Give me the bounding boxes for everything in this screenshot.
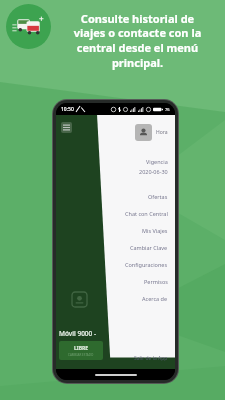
button[interactable]: Salir de la App <box>134 352 168 364</box>
staticText: Vigencia <box>146 158 168 165</box>
staticText: CAMBIAR ESTADO <box>68 353 94 357</box>
staticText: 76 <box>165 107 170 112</box>
button[interactable]: Profile <box>135 124 152 141</box>
button[interactable]: Mis Viajes <box>56 222 168 239</box>
staticText: Móvil 9000 - <box>59 329 97 338</box>
staticText: Hora <box>156 129 168 136</box>
button[interactable]: Open navigation menu <box>61 122 72 133</box>
staticText: Configuraciones <box>125 261 168 268</box>
button[interactable]: Chat con Central <box>56 205 168 222</box>
button[interactable]: Cambiar Clave <box>56 239 168 256</box>
staticText: Acerca de <box>142 295 168 302</box>
staticText: Mis Viajes <box>142 227 168 234</box>
staticText: Chat con Central <box>125 210 168 217</box>
button[interactable]: LIBRE <box>59 341 103 360</box>
button[interactable]: Acerca de <box>56 290 168 307</box>
staticText: Consulte historial de viajes o contacte … <box>57 11 218 71</box>
staticText: 10:50 <box>61 106 74 113</box>
staticText: Salir de la App <box>134 355 168 362</box>
staticText: LIBRE <box>74 345 89 352</box>
button[interactable]: Ofertas <box>56 188 168 205</box>
staticText: 2020-06-30 <box>139 168 168 175</box>
button[interactable]: App logo <box>6 4 51 49</box>
staticText: Cambiar Clave <box>130 244 168 251</box>
button[interactable]: Configuraciones <box>56 256 168 273</box>
button[interactable]: Permisos <box>56 273 168 290</box>
staticText: Permisos <box>144 278 168 285</box>
staticText: Ofertas <box>148 193 168 200</box>
